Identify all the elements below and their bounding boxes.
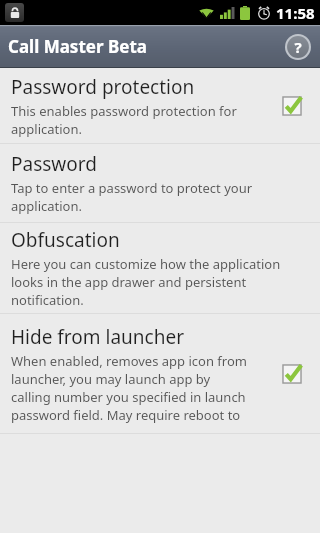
staticText: Password [11, 151, 97, 177]
staticText: calling number you specified in launch [11, 388, 246, 406]
staticText: application. [11, 197, 82, 215]
staticText: ? [294, 37, 302, 57]
button[interactable]: Password [0, 144, 320, 222]
button[interactable]: Hide from launcher [0, 314, 320, 433]
button[interactable]: Toggle Hide from launcher [272, 354, 312, 394]
staticText: 11:58 [276, 3, 315, 23]
staticText: Here you can customize how the applicati… [11, 255, 281, 273]
staticText: Hide from launcher [11, 324, 184, 350]
staticText: When enabled, removes app icon from [11, 352, 247, 370]
button[interactable]: Help [284, 33, 312, 61]
staticText: password field. May require reboot to [11, 406, 241, 424]
button[interactable]: Obfuscation [0, 223, 320, 313]
staticText: Call Master Beta [8, 35, 147, 58]
button[interactable]: Password protection [0, 68, 320, 143]
staticText: Password protection [11, 74, 195, 100]
staticText: notification. [11, 291, 84, 309]
staticText: launcher, you may launch app by [11, 370, 211, 388]
staticText: looks in the app drawer and persistent [11, 273, 247, 291]
staticText: Obfuscation [11, 227, 120, 253]
button[interactable]: Toggle Password protection [272, 86, 312, 126]
staticText: application. [11, 120, 82, 138]
staticText: This enables password protection for [11, 102, 237, 120]
staticText: Tap to enter a password to protect your [11, 179, 253, 197]
